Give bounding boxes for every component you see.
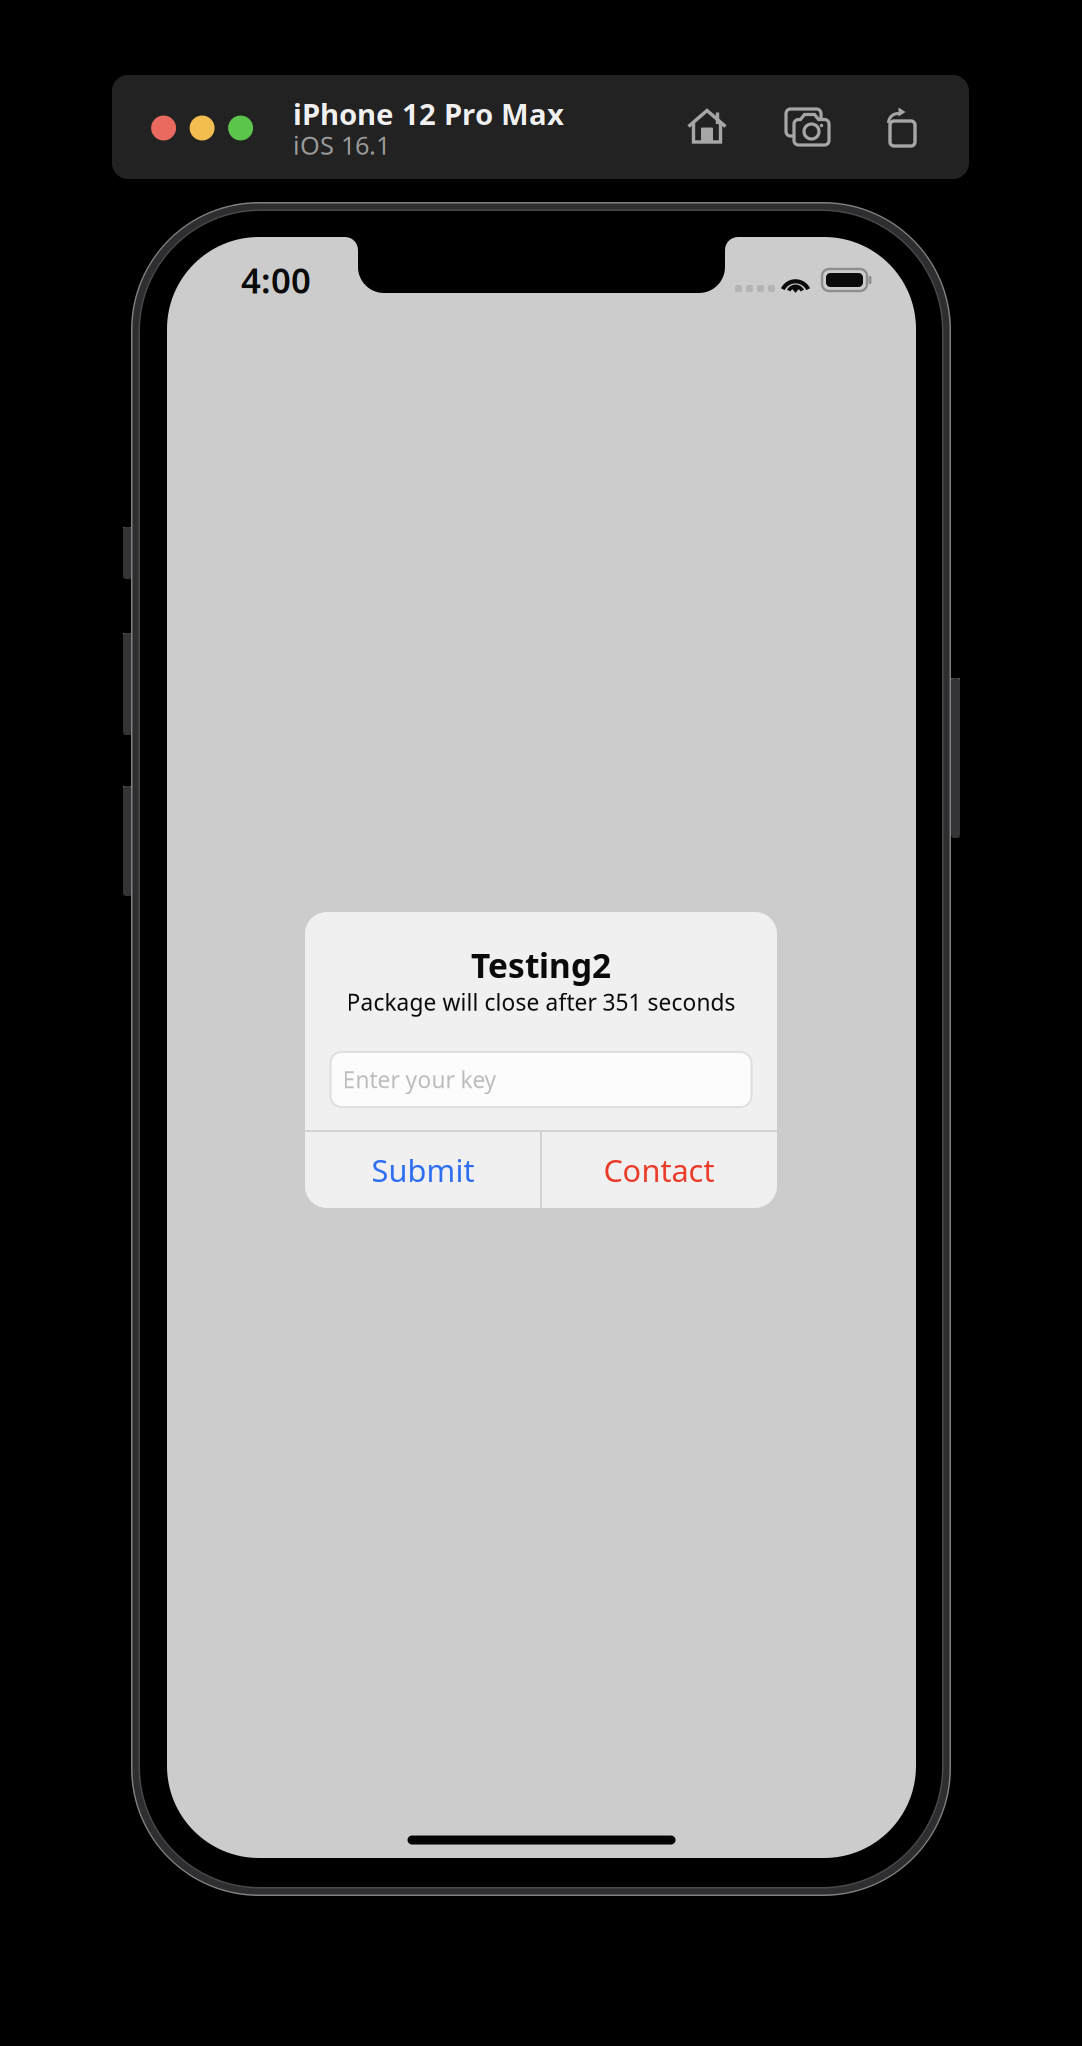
button[interactable]: Minimise <box>190 115 215 140</box>
staticText: Contact <box>603 1150 714 1190</box>
staticText: 4:00 <box>241 257 311 303</box>
staticText: iPhone 12 Pro Max <box>293 94 564 133</box>
button[interactable]: Home <box>685 104 729 148</box>
button[interactable]: Contact <box>541 1132 776 1208</box>
staticText: Submit <box>371 1150 474 1190</box>
button[interactable]: Screenshot <box>783 104 831 148</box>
staticText: Package will close after 351 seconds <box>346 987 735 1017</box>
staticText: iOS 16.1 <box>293 128 390 162</box>
button[interactable]: Zoom <box>228 115 253 140</box>
staticText: Testing2 <box>471 943 611 987</box>
button[interactable]: Close <box>151 115 176 140</box>
button[interactable]: Enter your key <box>330 1052 751 1107</box>
staticText: Enter your key <box>342 1064 496 1094</box>
button[interactable]: Rotate <box>877 104 921 148</box>
button[interactable]: Submit <box>305 1132 540 1208</box>
